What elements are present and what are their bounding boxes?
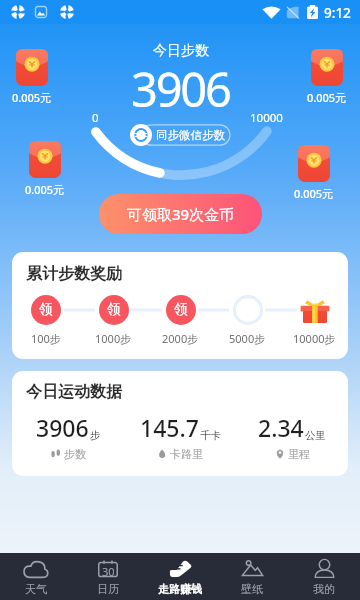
staticText: 3906: [36, 412, 89, 443]
staticText: 里程: [288, 447, 310, 461]
button[interactable]: 可领取39次金币: [99, 194, 262, 234]
button[interactable]: 10000步: [281, 294, 348, 346]
staticText: 壁纸: [241, 582, 263, 596]
staticText: 天气: [25, 582, 47, 596]
staticText: 公里: [305, 429, 326, 442]
button[interactable]: 走路赚钱: [144, 553, 216, 600]
button[interactable]: 领: [147, 294, 214, 346]
staticText: 领: [107, 301, 121, 319]
staticText: 2.34: [258, 412, 304, 443]
button[interactable]: 我的: [288, 553, 360, 600]
staticText: 5000步: [229, 331, 266, 346]
button[interactable]: 领: [80, 294, 147, 346]
staticText: 走路赚钱: [158, 582, 202, 596]
staticText: 0.005元: [294, 186, 334, 201]
staticText: 可领取39次金币: [127, 204, 235, 224]
button[interactable]: 同步微信步数: [130, 124, 230, 146]
button[interactable]: Open red packet: [5, 49, 59, 105]
button[interactable]: 30: [72, 553, 144, 600]
staticText: 10000: [250, 110, 283, 126]
staticText: 领: [174, 301, 188, 319]
staticText: 步数: [64, 447, 86, 461]
staticText: 1000步: [95, 331, 132, 346]
staticText: 同步微信步数: [156, 128, 225, 142]
staticText: 0.005元: [307, 90, 347, 105]
staticText: 0: [92, 110, 99, 126]
staticText: 10000步: [293, 331, 336, 346]
button[interactable]: Open red packet: [18, 141, 72, 197]
staticText: 2000步: [162, 331, 199, 346]
staticText: 累计步数奖励: [26, 264, 122, 284]
staticText: 步: [90, 429, 101, 442]
staticText: 我的: [313, 582, 335, 596]
staticText: 今日步数: [153, 42, 209, 60]
staticText: 日历: [97, 582, 119, 596]
button[interactable]: Open red packet: [300, 49, 354, 105]
staticText: 卡路里: [170, 447, 203, 461]
staticText: 100步: [31, 331, 61, 346]
staticText: 145.7: [140, 412, 199, 443]
button[interactable]: 天气: [0, 553, 72, 600]
staticText: 30: [102, 564, 115, 579]
staticText: 0.005元: [25, 182, 65, 197]
button[interactable]: 壁纸: [216, 553, 288, 600]
staticText: 千卡: [200, 429, 221, 442]
staticText: 领: [39, 301, 53, 319]
button[interactable]: 领: [12, 294, 80, 346]
button[interactable]: Open red packet: [287, 145, 341, 201]
button[interactable]: 5000步: [214, 294, 281, 346]
staticText: 今日运动数据: [26, 382, 122, 402]
staticText: 3906: [131, 57, 230, 121]
staticText: 0.005元: [12, 90, 52, 105]
staticText: 9:12: [324, 4, 351, 22]
